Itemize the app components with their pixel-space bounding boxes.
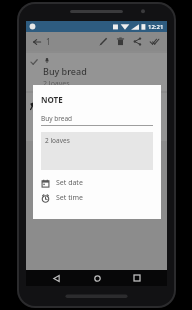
button[interactable]: 2 loaves — [41, 132, 153, 170]
staticText: 1 — [46, 36, 51, 47]
staticText: - Green. — [43, 128, 66, 136]
button[interactable]: Home — [87, 270, 107, 286]
staticText: 12:21 — [148, 23, 164, 31]
button[interactable]: Edit — [95, 32, 112, 51]
staticText: 2 loaves — [45, 136, 70, 145]
staticText: Buy bread — [41, 114, 73, 123]
staticText: NOTE — [41, 94, 63, 105]
staticText: 2 loaves — [43, 79, 70, 89]
staticText: 22/11/2015 - 10:00 — [52, 98, 100, 105]
button[interactable]: Set date — [41, 177, 153, 189]
button[interactable]: Buy bread — [41, 114, 153, 126]
button[interactable]: Back — [46, 270, 66, 286]
button[interactable]: Done all — [146, 32, 163, 51]
staticText: Set date — [56, 178, 83, 188]
staticText: Paint door — [43, 106, 88, 118]
button[interactable]: Back — [30, 35, 44, 49]
staticText: Set time — [56, 193, 83, 203]
button[interactable]: Delete — [112, 32, 129, 51]
staticText: - Orange. — [43, 136, 70, 144]
staticText: - Blue. — [43, 120, 61, 128]
button[interactable]: Set time — [41, 192, 153, 204]
button[interactable]: Share — [129, 32, 146, 51]
staticText: Buy bread — [43, 65, 87, 77]
button[interactable]: Recents — [127, 270, 147, 286]
